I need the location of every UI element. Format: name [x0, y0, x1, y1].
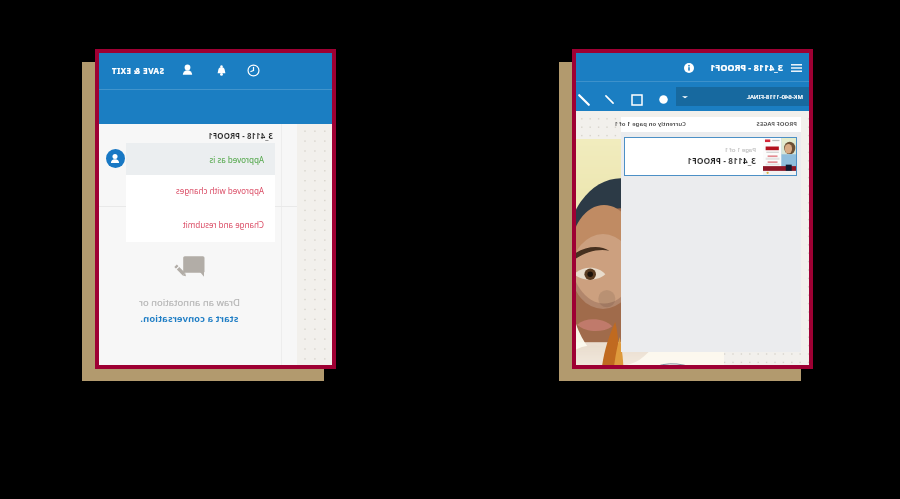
button[interactable]: Notifications: [215, 64, 228, 77]
button[interactable]: History: [247, 64, 260, 77]
staticText: start a conversation.: [140, 312, 239, 325]
button[interactable]: MK-640-1118-FINAL: [676, 87, 809, 106]
button[interactable]: start a conversation.: [140, 312, 239, 325]
button[interactable]: Page 1 of 1: [624, 137, 797, 176]
button[interactable]: Line tool: [602, 92, 617, 107]
button[interactable]: Ellipse tool: [656, 92, 671, 107]
button[interactable]: Info: [682, 61, 696, 75]
button[interactable]: Menu: [789, 60, 804, 75]
staticText: Approved as is: [209, 154, 264, 165]
staticText: Approved with changes: [175, 185, 264, 196]
staticText: SAVE & EXIT: [111, 65, 164, 76]
staticText: 3_4118 - PROOF1: [208, 130, 273, 141]
staticText: Change and resubmit: [182, 219, 264, 230]
button[interactable]: Approved with changes: [126, 175, 275, 206]
button[interactable]: Reviewer avatar: [106, 149, 125, 168]
staticText: MK-640-1118-FINAL: [746, 93, 803, 101]
button[interactable]: SAVE & EXIT: [109, 60, 166, 81]
staticText: Draw an annotation or: [139, 296, 240, 309]
button[interactable]: Profile: [181, 64, 194, 77]
staticText: PROOF PAGES: [756, 120, 797, 128]
staticText: Page 1 of 1: [724, 146, 756, 154]
button[interactable]: Change and resubmit: [126, 206, 275, 242]
staticText: Currently on page 1 of 1: [614, 120, 686, 128]
staticText: 3_4118 - PROOF1: [687, 155, 756, 167]
button[interactable]: Rectangle tool: [630, 92, 645, 107]
button[interactable]: Approved as is: [126, 143, 275, 175]
button[interactable]: Pen tool: [577, 92, 592, 107]
staticText: 3_4118 - PROOF1: [710, 61, 783, 73]
